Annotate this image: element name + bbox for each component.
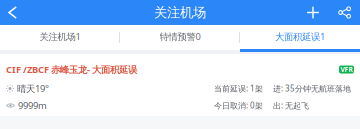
staticText: 进: 35分钟无航班落地 (273, 83, 351, 94)
button[interactable]: Share (330, 0, 360, 25)
button[interactable]: 关注机场1 (0, 25, 120, 50)
staticText: 关注机场1 (39, 30, 80, 43)
staticText: 特情预警0 (159, 30, 200, 43)
button[interactable]: Add (296, 0, 330, 25)
staticText: 大面积延误1 (275, 30, 325, 43)
staticText: 晴天19° (17, 82, 49, 95)
staticText: 出: 无起飞 (273, 100, 309, 111)
button[interactable]: Back (0, 0, 26, 25)
staticText: 今日取消: 0架 (214, 100, 263, 111)
staticText: 9999m (18, 99, 47, 112)
staticText: 关注机场 (154, 4, 206, 21)
button[interactable]: 特情预警0 (120, 25, 240, 50)
button[interactable]: 大面积延误1 (240, 25, 360, 50)
staticText: 当前延误: 1架 (214, 83, 263, 94)
staticText: VFR (340, 65, 352, 74)
staticText: CIF /ZBCF 赤峰玉龙- 大面积延误 (6, 63, 137, 76)
